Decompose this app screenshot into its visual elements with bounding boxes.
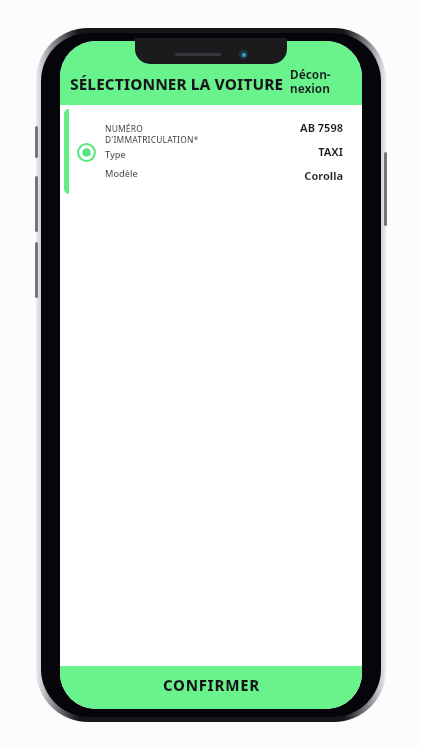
staticText: TAXI (318, 144, 343, 159)
staticText: NUMÉRO D'IMMATRICULATION* (105, 123, 199, 145)
button[interactable]: Select car (74, 140, 98, 164)
button[interactable]: CONFIRMER (60, 666, 362, 709)
staticText: AB 7598 (300, 120, 343, 135)
staticText: Type (105, 148, 126, 161)
button[interactable]: Select car (64, 109, 357, 194)
staticText: SÉLECTIONNER LA VOITURE (70, 74, 284, 95)
staticText: Modèle (105, 167, 138, 180)
staticText: Décon- nexion (290, 66, 331, 97)
staticText: Corolla (304, 168, 343, 183)
staticText: CONFIRMER (163, 675, 260, 695)
button[interactable]: Déconnexion (290, 66, 331, 97)
